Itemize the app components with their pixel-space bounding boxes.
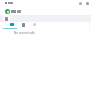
other: Battery: [86, 2, 89, 5]
other: Signal: [79, 2, 82, 5]
button[interactable]: Calls: [33, 23, 36, 26]
button[interactable]: Menu: [5, 17, 8, 21]
button[interactable]: Account: [5, 9, 10, 14]
staticText: No recent calls: [14, 31, 35, 35]
button[interactable]: Contacts: [22, 23, 25, 27]
button[interactable]: Chats: [10, 23, 14, 26]
